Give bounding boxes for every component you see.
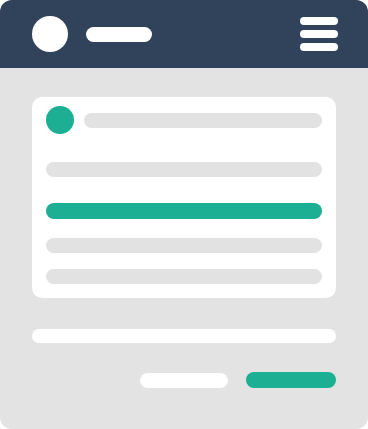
button[interactable]: Selected item xyxy=(32,97,336,298)
button[interactable]: Cancel xyxy=(140,373,228,388)
button[interactable]: Selected item xyxy=(46,203,322,219)
button[interactable]: Menu xyxy=(298,15,340,53)
button[interactable]: Confirm xyxy=(246,372,336,388)
button[interactable]: Profile xyxy=(32,16,68,52)
